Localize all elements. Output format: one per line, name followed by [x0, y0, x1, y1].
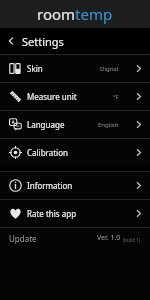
button[interactable]: Update — [0, 228, 150, 248]
staticText: Measure unit — [27, 91, 77, 102]
staticText: Update — [9, 233, 37, 244]
staticText: roomtemp — [37, 4, 113, 24]
staticText: Information — [27, 180, 73, 191]
button[interactable]: Measure unit — [0, 83, 150, 110]
staticText: Skin — [27, 63, 43, 74]
staticText: (build 1) — [123, 237, 141, 243]
staticText: English — [98, 121, 119, 129]
staticText: °F — [113, 93, 119, 101]
staticText: Ver. 1.0 — [97, 233, 121, 243]
button[interactable]: Language — [0, 111, 150, 138]
staticText: Calibration — [27, 147, 68, 158]
staticText: Language — [27, 119, 65, 130]
button[interactable]: Back — [0, 28, 22, 54]
staticText: Digital — [100, 65, 119, 73]
button[interactable]: Calibration — [0, 139, 150, 166]
staticText: Settings — [22, 34, 64, 49]
staticText: Rate this app — [27, 208, 77, 219]
button[interactable]: Skin — [0, 55, 150, 82]
button[interactable]: Rate this app — [0, 200, 150, 227]
button[interactable]: Information — [0, 172, 150, 199]
